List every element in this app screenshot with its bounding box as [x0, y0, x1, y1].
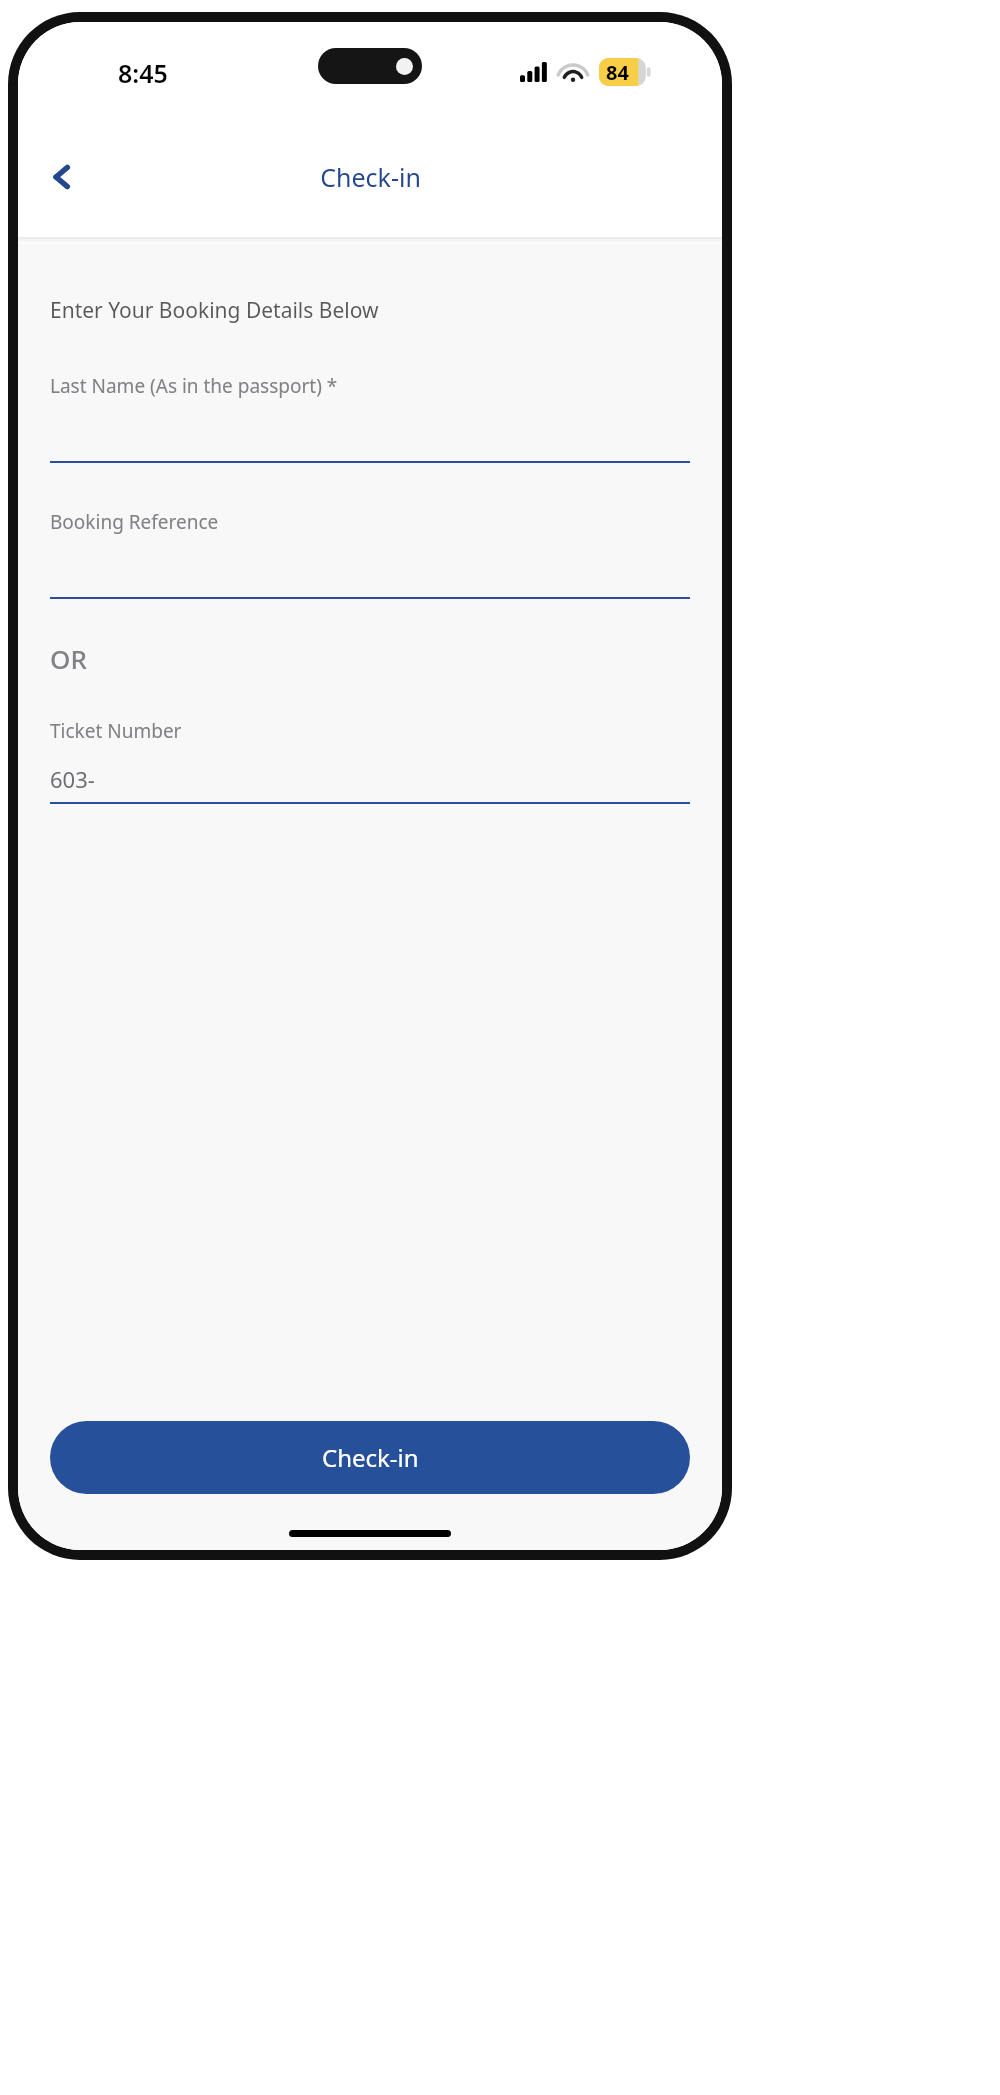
- staticText: Enter Your Booking Details Below: [50, 296, 379, 325]
- button[interactable]: Back: [34, 149, 90, 205]
- staticText: Booking Reference: [50, 509, 219, 535]
- staticText: 603-: [50, 764, 95, 794]
- button[interactable]: Ticket Number: [50, 718, 690, 804]
- staticText: Last Name (As in the passport) *: [50, 373, 338, 399]
- staticText: 8:45: [118, 56, 168, 90]
- staticText: Check-in: [322, 1441, 419, 1474]
- button[interactable]: Last Name (As in the passport) *: [50, 373, 690, 463]
- staticText: Ticket Number: [50, 718, 182, 744]
- staticText: 84: [606, 59, 629, 86]
- button[interactable]: Booking Reference: [50, 509, 690, 599]
- button[interactable]: Check-in: [50, 1421, 690, 1494]
- staticText: OR: [50, 641, 87, 676]
- staticText: Check-in: [320, 160, 421, 194]
